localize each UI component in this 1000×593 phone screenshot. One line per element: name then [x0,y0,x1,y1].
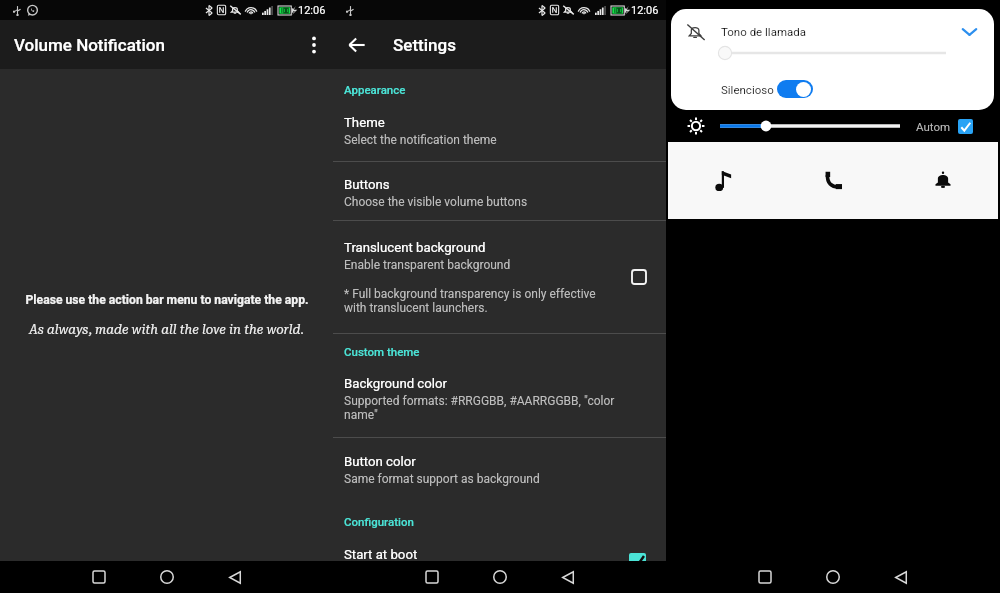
staticText: Select the notification theme [344,133,497,147]
staticText: Choose the visible volume buttons [344,195,528,209]
staticText: Enable transparent background [344,258,511,272]
staticText: Appearance [344,83,406,96]
staticText: Silencioso [721,83,774,96]
staticText: * Full background transparency is only e… [344,287,596,315]
staticText: Custom theme [344,345,420,358]
staticText: Start at boot [344,547,418,562]
button[interactable] [333,105,666,161]
staticText: 12:06 [631,4,659,17]
button[interactable]: Recents [83,561,115,593]
button[interactable]: Back [333,20,379,69]
button[interactable] [333,221,666,333]
button[interactable]: Recents [416,561,448,593]
staticText: Please use the action bar menu to naviga… [25,293,309,307]
staticText: Configuration [344,515,414,528]
button[interactable]: Back [219,561,251,593]
button[interactable]: Back [552,561,584,593]
button[interactable]: Home [484,561,516,593]
staticText: Supported formats: #RRGGBB, #AARRGGBB, "… [344,394,615,422]
staticText: Translucent background [344,240,486,255]
staticText: As always, made with all the love in the… [29,322,304,337]
button[interactable] [333,539,666,569]
staticText: Background color [344,376,447,391]
staticText: Tono de llamada [721,25,806,38]
staticText: Autom [916,120,951,133]
staticText: Settings [393,35,456,55]
button[interactable]: Media volume [668,142,778,219]
button[interactable]: Call volume [778,142,888,219]
staticText: Theme [344,115,385,130]
staticText: Button color [344,454,416,469]
button[interactable]: More options [295,20,333,69]
button[interactable]: Back [885,561,917,593]
button[interactable]: Expand ringtone [956,19,982,45]
button[interactable]: Home [151,561,183,593]
staticText: Volume Notification [14,35,295,55]
button[interactable]: Home [817,561,849,593]
staticText: 12:06 [298,4,326,17]
button[interactable] [333,162,666,220]
staticText: Same format support as background [344,472,540,486]
staticText: Buttons [344,177,390,192]
button[interactable]: Silent mode toggle [777,80,813,98]
button[interactable]: Auto brightness [958,119,973,134]
button[interactable] [333,438,666,493]
button[interactable]: Recents [749,561,781,593]
button[interactable] [333,366,666,437]
button[interactable]: Ring volume [888,142,998,219]
